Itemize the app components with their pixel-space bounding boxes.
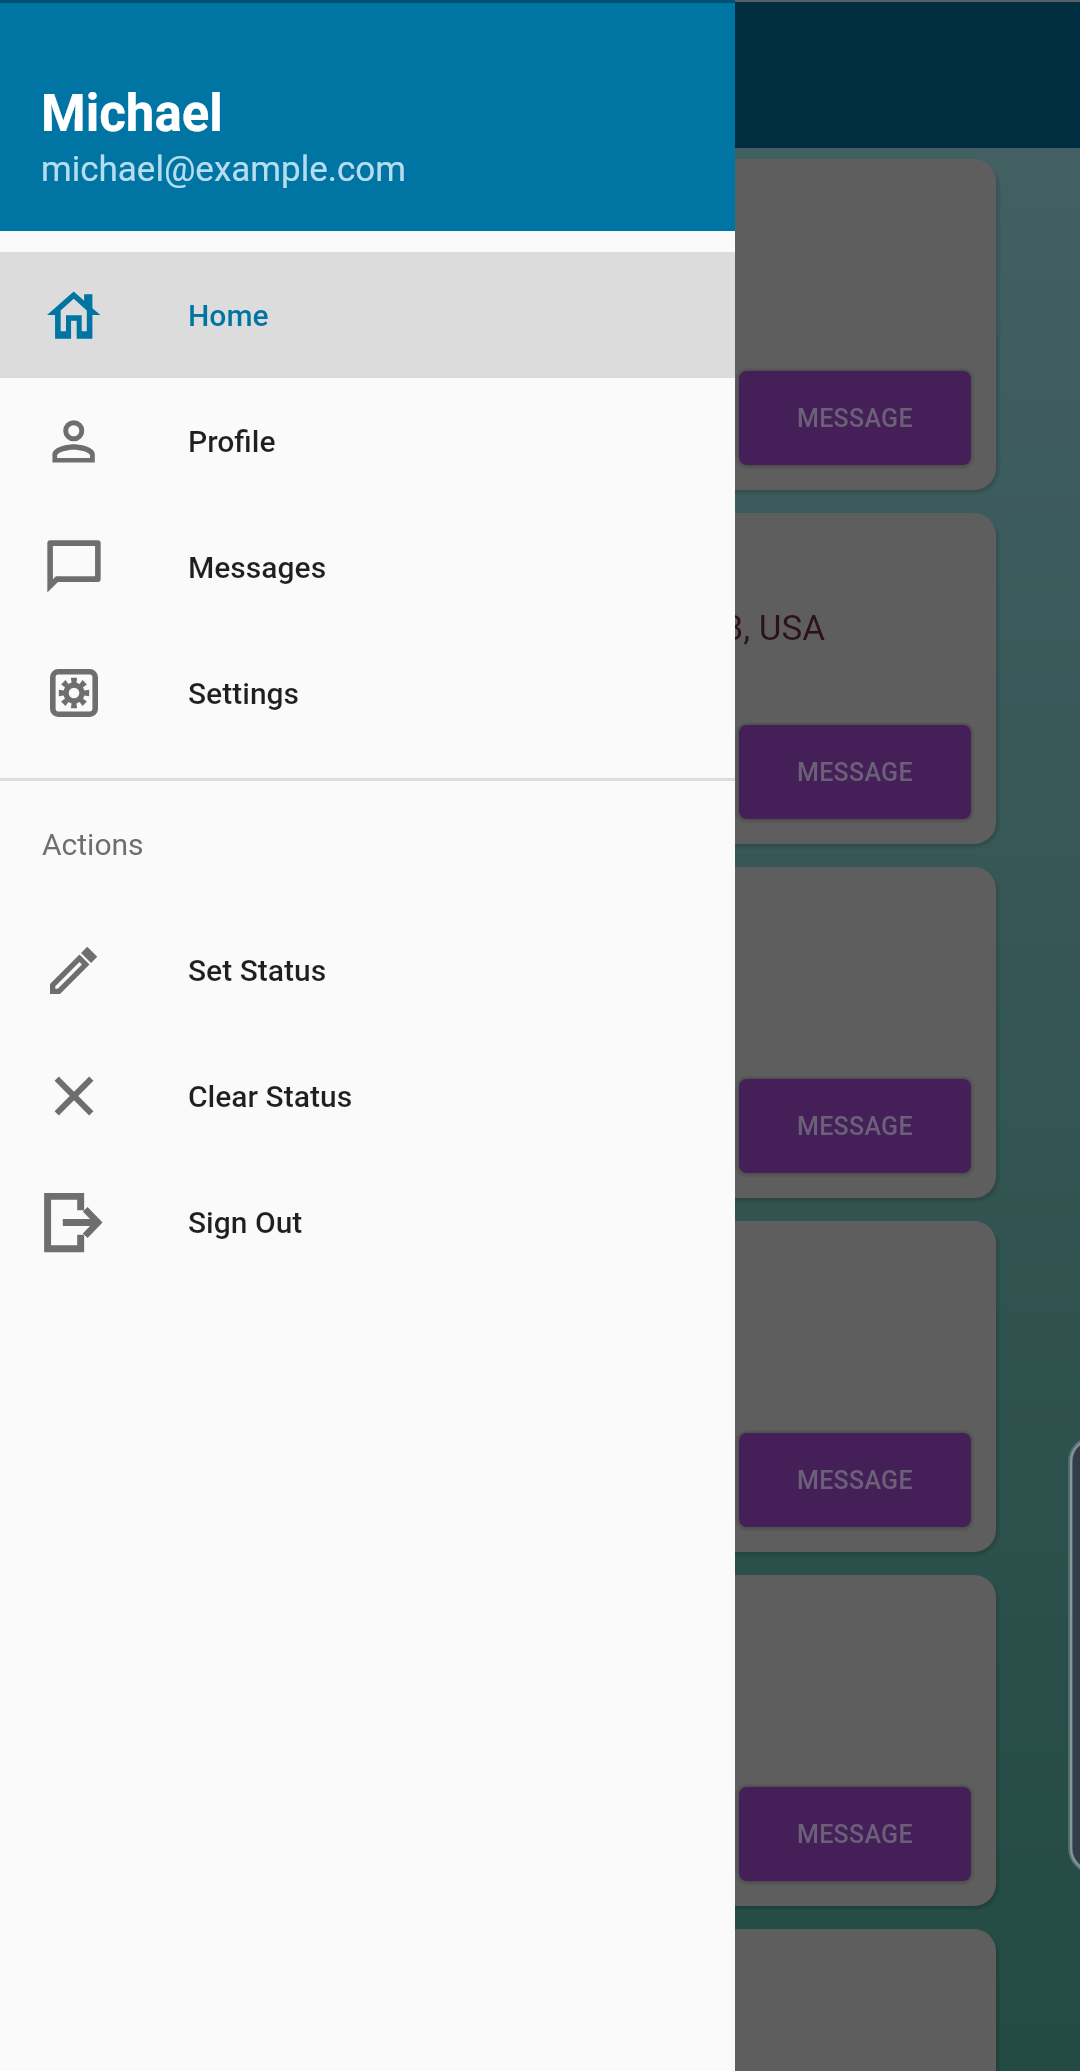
button[interactable]: Sign Out — [0, 1159, 735, 1285]
staticText: MESSAGE — [797, 758, 913, 787]
staticText: Actions — [42, 827, 144, 862]
button[interactable]: MESSAGE — [739, 371, 971, 465]
staticText: 350 Fifth Avenue, New York, NY 10118, US… — [150, 608, 826, 649]
button[interactable]: New message — [1069, 1437, 1080, 1873]
staticText: Michael — [41, 84, 223, 144]
button[interactable]: MESSAGE — [84, 1221, 996, 1552]
staticText: Sign Out — [188, 1205, 303, 1240]
staticText: Clear Status — [188, 1079, 353, 1114]
staticText: Profile — [188, 424, 276, 459]
button[interactable]: MESSAGE — [84, 867, 996, 1198]
button[interactable]: MESSAGE — [739, 725, 971, 819]
staticText: Messages — [188, 550, 327, 585]
staticText: MESSAGE — [797, 404, 913, 433]
staticText: MESSAGE — [797, 1466, 913, 1495]
staticText: michael@example.com — [41, 149, 406, 190]
button[interactable]: MESSAGE — [84, 159, 996, 490]
button[interactable]: MESSAGE — [739, 1079, 971, 1173]
button[interactable]: 350 Fifth Avenue, New York, NY 10118, US… — [84, 513, 996, 844]
button[interactable]: Messages — [0, 504, 735, 630]
button[interactable]: MESSAGE — [84, 1929, 996, 2071]
button[interactable]: Profile — [0, 378, 735, 504]
button[interactable]: Clear Status — [0, 1033, 735, 1159]
staticText: Settings — [188, 676, 300, 711]
button[interactable]: Home — [0, 252, 735, 378]
staticText: Home — [188, 298, 269, 333]
button[interactable]: Settings — [0, 630, 735, 756]
button[interactable]: MESSAGE — [739, 1787, 971, 1881]
button[interactable]: Set Status — [0, 907, 735, 1033]
staticText: MESSAGE — [797, 1112, 913, 1141]
staticText: MESSAGE — [797, 1820, 913, 1849]
button[interactable]: MESSAGE — [739, 1433, 971, 1527]
staticText: Set Status — [188, 953, 327, 988]
button[interactable]: MESSAGE — [84, 1575, 996, 1906]
